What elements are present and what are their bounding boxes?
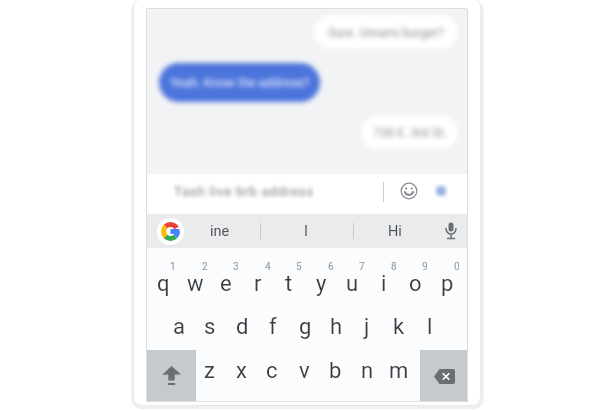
button[interactable]: o [401, 270, 429, 298]
button[interactable] [146, 350, 196, 402]
button[interactable]: f [259, 313, 287, 341]
button[interactable]: Yeah. Know the address? [159, 63, 320, 102]
button[interactable] [400, 182, 418, 200]
staticText: Yeah. Know the address? [170, 75, 310, 90]
staticText: 7 [359, 261, 365, 273]
staticText: 9 [422, 261, 428, 273]
button[interactable]: ine [195, 216, 245, 246]
button[interactable]: w [181, 270, 209, 298]
button[interactable]: z [195, 357, 223, 385]
button[interactable]: q [149, 270, 177, 298]
button[interactable]: 9 [411, 253, 439, 281]
button[interactable]: s [196, 313, 224, 341]
staticText: 8 [391, 261, 397, 273]
button[interactable]: u [338, 270, 366, 298]
staticText: c [266, 358, 278, 384]
button[interactable]: 2 [191, 253, 219, 281]
staticText: 738 E. 3rd St. [373, 125, 447, 140]
staticText: t [285, 271, 293, 297]
staticText: Tash live brb address [174, 183, 314, 199]
button[interactable]: t [275, 270, 303, 298]
staticText: y [316, 271, 327, 297]
button[interactable]: 0 [443, 253, 468, 281]
staticText: g [299, 314, 312, 340]
button[interactable]: p [433, 270, 461, 298]
staticText: z [204, 358, 215, 384]
staticText: I [304, 223, 308, 240]
staticText: s [204, 314, 216, 340]
button[interactable]: 3 [222, 253, 250, 281]
button[interactable]: m [385, 357, 413, 385]
staticText: n [361, 358, 374, 384]
staticText: f [269, 314, 277, 340]
button[interactable]: l [416, 313, 444, 341]
button[interactable]: I [281, 216, 331, 246]
staticText: o [409, 271, 422, 297]
staticText: 3 [233, 261, 239, 273]
staticText: p [441, 271, 454, 297]
button[interactable] [161, 222, 180, 241]
button[interactable]: k [385, 313, 413, 341]
button[interactable]: Hi [370, 216, 420, 246]
staticText: q [157, 271, 170, 297]
staticText: 0 [454, 261, 460, 273]
staticText: j [364, 314, 370, 340]
staticText: v [299, 358, 310, 384]
staticText: w [187, 271, 204, 297]
button[interactable]: y [307, 270, 335, 298]
button[interactable]: n [353, 357, 381, 385]
staticText: 2 [202, 261, 208, 273]
button[interactable]: 738 E. 3rd St. [361, 116, 458, 149]
staticText: Hi [388, 223, 402, 240]
button[interactable] [434, 184, 448, 198]
button[interactable]: g [291, 313, 319, 341]
button[interactable] [443, 221, 459, 241]
button[interactable] [420, 350, 468, 402]
button[interactable]: a [165, 313, 193, 341]
button[interactable]: 6 [317, 253, 345, 281]
button[interactable]: 4 [254, 253, 282, 281]
staticText: 5 [296, 261, 302, 273]
button[interactable]: 7 [348, 253, 376, 281]
button[interactable]: x [227, 357, 255, 385]
button[interactable]: b [321, 357, 349, 385]
button[interactable]: v [290, 357, 318, 385]
staticText: h [330, 314, 343, 340]
staticText: 4 [265, 261, 271, 273]
staticText: l [427, 314, 433, 340]
staticText: r [254, 271, 262, 297]
staticText: 6 [328, 261, 334, 273]
button[interactable]: 1 [159, 253, 187, 281]
staticText: e [220, 271, 232, 297]
button[interactable]: h [322, 313, 350, 341]
button[interactable]: d [228, 313, 256, 341]
staticText: i [381, 271, 387, 297]
button[interactable]: j [353, 313, 381, 341]
staticText: d [236, 314, 249, 340]
button[interactable]: e [212, 270, 240, 298]
button[interactable]: c [258, 357, 286, 385]
staticText: a [173, 314, 185, 340]
staticText: k [393, 314, 405, 340]
button[interactable]: 8 [380, 253, 408, 281]
button[interactable]: 5 [285, 253, 313, 281]
staticText: x [236, 358, 247, 384]
staticText: u [346, 271, 359, 297]
button[interactable]: Sure. Umami burger? [314, 15, 458, 49]
staticText: 1 [170, 261, 176, 273]
button[interactable]: r [244, 270, 272, 298]
staticText: ine [210, 223, 230, 240]
staticText: b [329, 358, 342, 384]
staticText: m [389, 358, 409, 384]
staticText: Sure. Umami burger? [328, 25, 445, 40]
button[interactable]: i [370, 270, 398, 298]
